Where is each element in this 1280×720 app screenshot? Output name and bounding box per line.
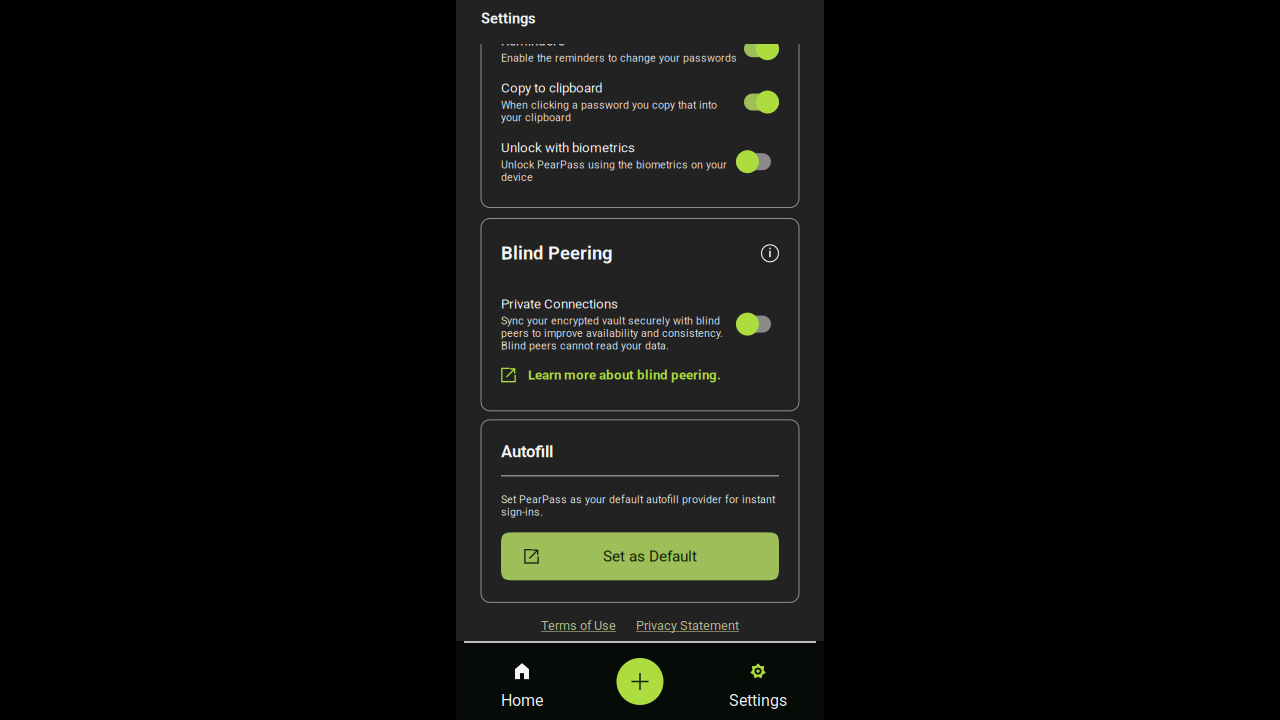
button[interactable]: Learn more about blind peering. <box>501 367 779 383</box>
staticText: Learn more about blind peering. <box>528 367 721 383</box>
staticText: Copy to clipboard <box>501 80 603 96</box>
staticText: Enable the reminders to change your pass… <box>501 52 737 64</box>
staticText: Set PearPass as your default autofill pr… <box>501 493 775 518</box>
button[interactable]: Terms of Use <box>541 618 616 633</box>
staticText: When clicking a password you copy that i… <box>501 99 717 124</box>
staticText: Reminders <box>501 33 565 49</box>
staticText: Sync your encrypted vault securely with … <box>501 315 723 352</box>
button[interactable]: Home <box>456 643 588 720</box>
staticText: Unlock with biometrics <box>501 140 635 155</box>
staticText: Home <box>501 691 543 710</box>
button[interactable]: Add <box>588 643 692 720</box>
staticText: Blind Peering <box>501 242 613 264</box>
button[interactable]: Copy to clipboard <box>501 80 779 124</box>
staticText: Set as Default <box>603 547 697 565</box>
staticText: Autofill <box>501 442 553 461</box>
staticText: Unlock PearPass using the biometrics on … <box>501 158 727 183</box>
staticText: Protect your vault with an extra layer <box>501 5 677 17</box>
staticText: Terms of Use <box>541 618 616 633</box>
button[interactable]: About blind peering <box>761 244 779 262</box>
button[interactable]: Settings <box>692 643 824 720</box>
button[interactable]: Privacy Statement <box>636 618 739 633</box>
staticText: Settings <box>729 691 787 710</box>
staticText: Private Connections <box>501 296 618 312</box>
staticText: Settings <box>481 10 536 27</box>
staticText: Privacy Statement <box>636 618 739 633</box>
button[interactable]: Unlock with biometrics <box>501 140 779 183</box>
button[interactable]: Security <box>501 0 779 17</box>
button[interactable]: Set as Default <box>501 532 779 580</box>
button[interactable]: Private Connections <box>501 296 779 352</box>
button[interactable]: Reminders <box>501 33 779 64</box>
